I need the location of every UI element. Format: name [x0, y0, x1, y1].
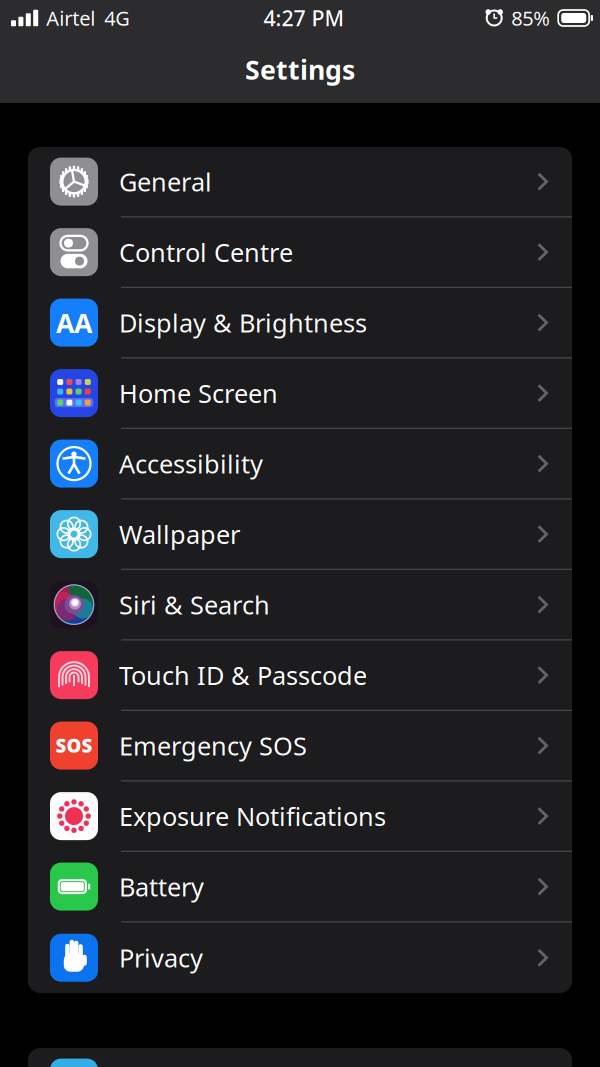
staticText: Exposure Notifications: [119, 799, 386, 833]
staticText: Settings: [245, 52, 355, 87]
button[interactable]: Battery: [28, 852, 572, 922]
staticText: 4:27 PM: [263, 4, 344, 32]
staticText: Home Screen: [119, 376, 278, 410]
staticText: 4G: [104, 5, 130, 31]
button[interactable]: Privacy: [28, 922, 572, 993]
staticText: Privacy: [119, 941, 203, 974]
staticText: Display & Brightness: [119, 306, 367, 339]
button[interactable]: Accessibility: [28, 429, 572, 499]
button[interactable]: Siri & Search: [28, 570, 572, 640]
staticText: AA: [56, 305, 92, 340]
staticText: Emergency SOS: [119, 729, 307, 762]
staticText: 85%: [511, 5, 550, 31]
staticText: General: [119, 165, 212, 198]
button[interactable]: General: [28, 147, 572, 217]
staticText: Battery: [119, 870, 204, 903]
button[interactable]: Home Screen: [28, 358, 572, 429]
button[interactable]: App Store: [28, 1048, 572, 1067]
staticText: Accessibility: [119, 447, 263, 480]
staticText: Siri & Search: [119, 588, 270, 621]
button[interactable]: Touch ID & Passcode: [28, 640, 572, 711]
staticText: Control Centre: [119, 235, 293, 269]
button[interactable]: Wallpaper: [28, 499, 572, 570]
button[interactable]: Exposure Notifications: [28, 781, 572, 852]
staticText: Wallpaper: [119, 517, 240, 551]
staticText: SOS: [55, 733, 92, 758]
button[interactable]: Emergency SOS: [28, 711, 572, 781]
staticText: Touch ID & Passcode: [119, 658, 367, 692]
button[interactable]: Control Centre: [28, 217, 572, 288]
staticText: Airtel: [46, 5, 95, 31]
button[interactable]: Display & Brightness: [28, 288, 572, 358]
